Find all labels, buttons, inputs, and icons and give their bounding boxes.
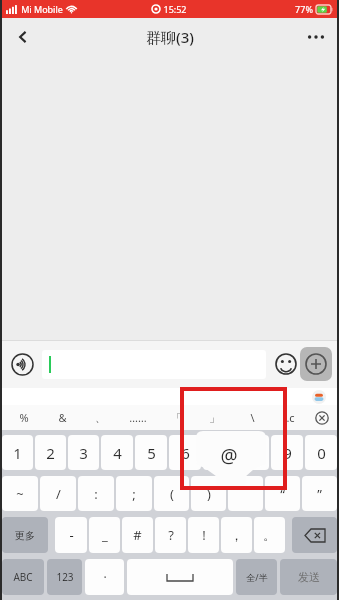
- button[interactable]: 123: [47, 559, 82, 595]
- staticText: 」: [209, 411, 220, 425]
- button[interactable]: ): [191, 476, 226, 511]
- staticText: 2: [46, 443, 55, 463]
- staticText: 、: [95, 411, 106, 425]
- staticText: 4: [113, 443, 122, 463]
- button[interactable]: [42, 350, 266, 379]
- staticText: @: [220, 443, 238, 469]
- staticText: 全/半: [246, 571, 268, 583]
- staticText: -: [69, 526, 74, 544]
- button[interactable]: 「: [157, 405, 195, 430]
- staticText: ·: [103, 569, 107, 585]
- staticText: ;: [132, 485, 136, 503]
- staticText: 1: [13, 443, 22, 463]
- button[interactable]: .c: [271, 405, 309, 430]
- button[interactable]: /: [40, 476, 76, 511]
- button[interactable]: Sticker: [312, 390, 326, 404]
- button[interactable]: More options: [299, 20, 333, 54]
- button[interactable]: ;: [116, 476, 152, 511]
- staticText: 9: [283, 443, 292, 463]
- staticText: (: [170, 485, 174, 503]
- button[interactable]: 1: [2, 435, 33, 470]
- staticText: ……: [129, 410, 147, 425]
- button[interactable]: ?: [155, 517, 186, 553]
- button[interactable]: (: [154, 476, 189, 511]
- staticText: &: [58, 410, 67, 425]
- button[interactable]: Backspace: [292, 517, 337, 553]
- button[interactable]: !: [188, 517, 219, 553]
- button[interactable]: ·: [85, 559, 124, 595]
- staticText: ?: [168, 526, 174, 544]
- staticText: #: [133, 526, 142, 544]
- staticText: 发送: [298, 570, 320, 584]
- staticText: “: [280, 485, 285, 503]
- button[interactable]: 」: [195, 405, 233, 430]
- button[interactable]: Close suggestions: [312, 408, 332, 428]
- staticText: :: [94, 485, 98, 503]
- button[interactable]: Voice input: [7, 349, 37, 379]
- button[interactable]: 全/半: [236, 559, 277, 595]
- button[interactable]: -: [55, 517, 87, 553]
- button[interactable]: 9: [271, 435, 303, 470]
- button[interactable]: Emoji: [272, 350, 300, 378]
- button[interactable]: More functions: [300, 347, 332, 381]
- staticText: ~: [16, 485, 24, 503]
- staticText: 3: [79, 443, 88, 463]
- staticText: 15:52: [163, 3, 187, 15]
- button[interactable]: %: [4, 405, 43, 430]
- staticText: 0: [317, 443, 326, 463]
- staticText: 群聊(3): [146, 27, 194, 47]
- staticText: 更多: [15, 529, 35, 542]
- button[interactable]: 3: [68, 435, 99, 470]
- staticText: ，: [230, 527, 243, 543]
- button[interactable]: Space: [127, 559, 233, 595]
- button[interactable]: ……: [119, 405, 157, 430]
- staticText: 「: [171, 411, 182, 425]
- button[interactable]: &: [43, 405, 81, 430]
- staticText: ”: [317, 485, 322, 503]
- staticText: .c: [286, 410, 295, 425]
- button[interactable]: _: [89, 517, 120, 553]
- staticText: 。: [263, 527, 276, 543]
- staticText: ): [207, 485, 211, 503]
- staticText: _: [102, 526, 108, 544]
- button[interactable]: [203, 435, 235, 470]
- button[interactable]: [228, 476, 263, 511]
- staticText: !: [202, 526, 206, 544]
- staticText: ABC: [13, 570, 33, 584]
- button[interactable]: 发送: [280, 559, 337, 595]
- staticText: 6: [181, 443, 190, 463]
- button[interactable]: 0: [305, 435, 337, 470]
- button[interactable]: “: [265, 476, 300, 511]
- button[interactable]: Back: [6, 20, 40, 54]
- button[interactable]: 6: [169, 435, 201, 470]
- button[interactable]: 、: [81, 405, 119, 430]
- button[interactable]: ~: [2, 476, 38, 511]
- button[interactable]: ，: [221, 517, 252, 553]
- staticText: /: [56, 485, 61, 503]
- button[interactable]: #: [122, 517, 153, 553]
- button[interactable]: 更多: [2, 517, 48, 553]
- button[interactable]: 5: [135, 435, 167, 470]
- button[interactable]: :: [78, 476, 114, 511]
- staticText: 77%: [295, 3, 313, 15]
- button[interactable]: 。: [254, 517, 285, 553]
- button[interactable]: 2: [35, 435, 66, 470]
- staticText: Mi Mobile: [21, 3, 63, 15]
- button[interactable]: \: [233, 405, 271, 430]
- button[interactable]: ABC: [2, 559, 44, 595]
- staticText: 123: [56, 570, 74, 584]
- staticText: %: [19, 410, 29, 425]
- button[interactable]: ”: [302, 476, 337, 511]
- button[interactable]: 4: [101, 435, 133, 470]
- staticText: 5: [147, 443, 156, 463]
- staticText: \: [250, 410, 255, 425]
